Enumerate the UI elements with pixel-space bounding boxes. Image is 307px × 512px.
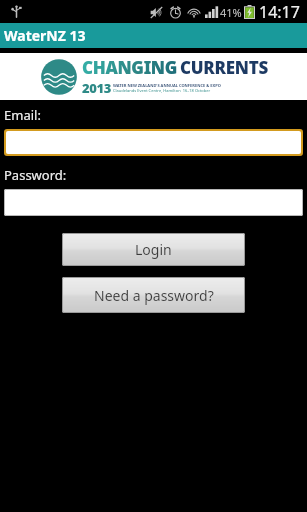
- button[interactable]: Need a password?: [62, 277, 245, 313]
- staticText: Email:: [4, 106, 41, 124]
- staticText: CHANGING: [82, 56, 177, 79]
- staticText: Password:: [4, 166, 67, 184]
- button[interactable]: [4, 189, 303, 216]
- button[interactable]: [6, 131, 301, 154]
- staticText: WaterNZ 13: [4, 26, 86, 45]
- staticText: Need a password?: [94, 286, 214, 305]
- staticText: 14:17: [259, 1, 300, 23]
- button[interactable]: WaterNZ 13: [0, 23, 307, 48]
- staticText: Claudelands Event Centre, Hamilton 16–18…: [113, 88, 211, 93]
- button[interactable]: Login: [62, 233, 245, 266]
- staticText: 2013: [82, 79, 111, 97]
- staticText: CURRENTS: [180, 56, 268, 79]
- staticText: Login: [135, 240, 172, 259]
- staticText: WATER NEW ZEALAND'S ANNUAL CONFERENCE & …: [113, 83, 221, 88]
- staticText: 41%: [220, 5, 242, 20]
